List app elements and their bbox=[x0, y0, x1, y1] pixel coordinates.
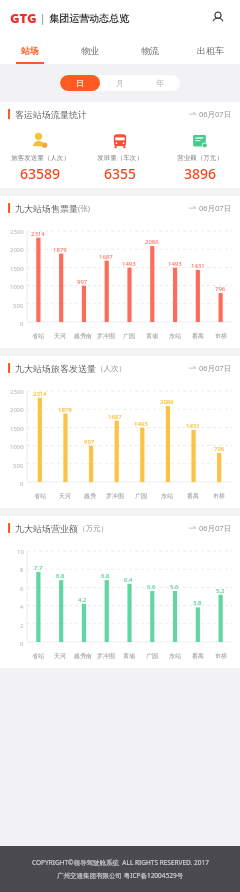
staticText: 2500 bbox=[10, 388, 24, 396]
staticText: 1879 bbox=[58, 406, 72, 414]
button[interactable]: 营业额（万元） bbox=[160, 126, 240, 188]
staticText: （万元） bbox=[78, 524, 108, 533]
staticText: 0 bbox=[20, 320, 24, 328]
staticText: 旅客发送量（人次） bbox=[11, 154, 70, 162]
staticText: 市桥 bbox=[213, 492, 225, 500]
staticText: 市桥 bbox=[215, 332, 227, 340]
staticText: 省站 bbox=[34, 492, 46, 500]
staticText: 2086 bbox=[145, 238, 159, 246]
staticText: 省站 bbox=[32, 652, 44, 660]
staticText: 1000 bbox=[10, 443, 24, 451]
staticText: 月 bbox=[116, 78, 124, 88]
staticText: 东站 bbox=[169, 332, 181, 340]
staticText: 物业 bbox=[81, 45, 99, 56]
staticText: 出租车 bbox=[197, 45, 224, 56]
staticText: 8 bbox=[20, 566, 24, 574]
staticText: 500 bbox=[13, 302, 24, 310]
staticText: 越秀南 bbox=[74, 652, 92, 660]
button[interactable]: 站场 bbox=[0, 36, 60, 64]
staticText: 发班量（车次） bbox=[97, 154, 143, 162]
staticText: 天河 bbox=[59, 492, 71, 500]
button[interactable]: 物业 bbox=[60, 36, 120, 64]
staticText: 1687 bbox=[99, 253, 113, 261]
staticText: 省站 bbox=[32, 332, 44, 340]
staticText: 3896 bbox=[184, 164, 217, 183]
button[interactable]: 日 bbox=[60, 75, 100, 91]
staticText: 1687 bbox=[108, 413, 122, 421]
staticText: 5.2 bbox=[216, 587, 225, 595]
staticText: 物流 bbox=[141, 45, 159, 56]
staticText: 06月07日 bbox=[199, 363, 232, 373]
button[interactable]: 月 bbox=[100, 75, 140, 91]
staticText: 越秀南 bbox=[74, 332, 92, 340]
staticText: 集团运营动态总览 bbox=[49, 12, 129, 25]
staticText: 番禺 bbox=[187, 492, 199, 500]
staticText: 番禺 bbox=[192, 332, 204, 340]
staticText: COPYRIGHT©领导驾驶舱系统 ALL RIGHTS RESERVED. 2… bbox=[32, 858, 209, 867]
staticText: 广园 bbox=[146, 652, 158, 660]
staticText: 997 bbox=[84, 438, 95, 446]
staticText: 日 bbox=[76, 78, 84, 88]
staticText: 6.4 bbox=[124, 576, 133, 584]
staticText: 06月07日 bbox=[199, 203, 232, 213]
staticText: 市桥 bbox=[215, 652, 227, 660]
staticText: 5.6 bbox=[170, 583, 179, 591]
staticText: 06月07日 bbox=[199, 109, 232, 119]
staticText: 1000 bbox=[10, 283, 24, 291]
staticText: 越秀 bbox=[84, 492, 96, 500]
staticText: 0 bbox=[20, 640, 24, 648]
staticText: 10 bbox=[17, 548, 24, 556]
staticText: 年 bbox=[156, 78, 164, 88]
staticText: 5.6 bbox=[147, 583, 156, 591]
staticText: 7.7 bbox=[34, 564, 43, 572]
staticText: 广州交通集团有限公司 粤ICP备12004529号 bbox=[57, 871, 184, 880]
staticText: 天河 bbox=[54, 652, 66, 660]
staticText: 0 bbox=[20, 480, 24, 488]
staticText: | bbox=[40, 11, 46, 25]
staticText: 1500 bbox=[10, 265, 24, 273]
staticText: 2500 bbox=[10, 228, 24, 236]
staticText: 6 bbox=[20, 585, 24, 593]
button[interactable]: 物流 bbox=[120, 36, 180, 64]
staticText: 6.8 bbox=[101, 572, 110, 580]
staticText: 客运站场流量统计 bbox=[15, 109, 87, 120]
staticText: 796 bbox=[215, 285, 226, 293]
button[interactable]: 年 bbox=[140, 75, 180, 91]
staticText: 1879 bbox=[53, 246, 67, 254]
staticText: 广园 bbox=[123, 332, 135, 340]
staticText: 1431 bbox=[191, 262, 205, 270]
staticText: 796 bbox=[214, 445, 225, 453]
staticText: 2086 bbox=[160, 398, 174, 406]
staticText: 黄埔 bbox=[123, 652, 135, 660]
button[interactable]: Account bbox=[206, 6, 230, 30]
staticText: 番禺 bbox=[192, 652, 204, 660]
staticText: 九大站场售票量 bbox=[15, 203, 78, 214]
staticText: 2314 bbox=[33, 390, 47, 398]
staticText: 2314 bbox=[31, 230, 45, 238]
button[interactable]: 发班量（车次） bbox=[80, 126, 160, 188]
button[interactable]: 出租车 bbox=[180, 36, 240, 64]
staticText: 06月07日 bbox=[199, 523, 232, 533]
staticText: 天河 bbox=[54, 332, 66, 340]
staticText: 东站 bbox=[169, 652, 181, 660]
staticText: GTG bbox=[10, 9, 37, 27]
staticText: 营业额（万元） bbox=[177, 154, 223, 162]
staticText: 广园 bbox=[135, 492, 147, 500]
staticText: 2000 bbox=[10, 406, 24, 414]
staticText: 1500 bbox=[10, 425, 24, 433]
staticText: 500 bbox=[13, 462, 24, 470]
staticText: 1493 bbox=[168, 260, 182, 268]
staticText: 九大站场旅客发送量 bbox=[15, 363, 96, 374]
staticText: 4 bbox=[20, 603, 24, 611]
staticText: 4.2 bbox=[78, 596, 87, 604]
staticText: 站场 bbox=[21, 45, 39, 56]
staticText: 九大站场营业额 bbox=[15, 523, 78, 534]
staticText: 1431 bbox=[186, 422, 200, 430]
staticText: 63589 bbox=[20, 164, 61, 183]
staticText: (张) bbox=[78, 203, 90, 213]
staticText: 1493 bbox=[134, 420, 148, 428]
button[interactable]: 旅客发送量（人次） bbox=[0, 126, 80, 188]
staticText: 黄埔 bbox=[146, 332, 158, 340]
staticText: 3.8 bbox=[193, 599, 202, 607]
staticText: 罗冲围 bbox=[97, 652, 115, 660]
